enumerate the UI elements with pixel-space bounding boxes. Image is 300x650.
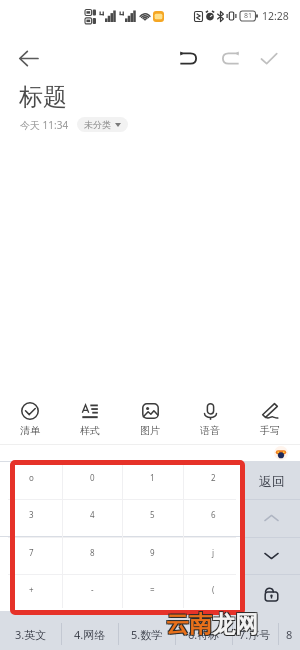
button[interactable]: 4 — [62, 499, 123, 536]
button[interactable]: ( — [183, 574, 243, 611]
staticText: o — [29, 472, 34, 483]
button[interactable]: 5 — [122, 499, 183, 536]
staticText: 7 — [29, 547, 34, 558]
staticText: 6.符标 — [188, 627, 220, 642]
button[interactable]: Undo — [171, 41, 206, 76]
staticText: 3.英文 — [15, 627, 47, 642]
button[interactable]: 8 — [62, 537, 123, 574]
button[interactable]: 1 — [122, 462, 183, 499]
button[interactable]: 3.英文 — [0, 618, 61, 650]
staticText: 云南龙网 — [167, 609, 259, 638]
button[interactable]: 未分类 — [77, 117, 128, 132]
staticText: 4 — [90, 509, 95, 520]
staticText: 返回 — [259, 473, 285, 489]
staticText: ( — [212, 584, 215, 595]
button[interactable]: 9 — [122, 537, 183, 574]
staticText: 6 — [211, 509, 216, 520]
staticText: 云南龙网 — [165, 609, 257, 638]
staticText: 云南龙网 — [165, 611, 257, 640]
staticText: 5.数学 — [131, 627, 163, 642]
button[interactable]: = — [122, 574, 183, 611]
button[interactable]: 语音 — [180, 396, 240, 440]
button[interactable]: 手写 — [240, 396, 300, 440]
button[interactable]: 7 — [0, 537, 62, 574]
staticText: 未分类 — [84, 119, 111, 130]
staticText: 81 — [244, 11, 253, 21]
staticText: 手写 — [260, 424, 280, 437]
staticText: + — [29, 584, 34, 595]
button[interactable]: 7.序号 — [232, 618, 278, 650]
staticText: j — [212, 547, 215, 558]
staticText: 今天 11:34 — [20, 118, 69, 132]
staticText: 0 — [90, 472, 95, 483]
button[interactable]: 样式 — [60, 396, 120, 440]
staticText: 标题 — [19, 82, 67, 112]
staticText: 5 — [150, 509, 155, 520]
staticText: 清单 — [20, 424, 40, 437]
button[interactable]: 清单 — [0, 396, 60, 440]
staticText: 云南龙网 — [167, 611, 259, 640]
button[interactable]: Lock — [243, 574, 300, 611]
button[interactable]: Redo — [213, 41, 248, 76]
staticText: 9 — [150, 547, 155, 558]
button[interactable]: 5.数学 — [118, 618, 175, 650]
staticText: 12:28 — [262, 9, 289, 23]
button[interactable]: 4.网络 — [61, 618, 118, 650]
staticText: 龙网 — [212, 610, 258, 639]
staticText: = — [150, 584, 155, 595]
button[interactable]: 3 — [0, 499, 62, 536]
staticText: 云南 — [166, 610, 212, 639]
button[interactable]: Done — [251, 41, 286, 76]
staticText: 7.序号 — [239, 627, 271, 642]
staticText: 语音 — [200, 424, 220, 437]
staticText: 8 — [286, 627, 293, 642]
staticText: 2 — [211, 472, 216, 483]
button[interactable]: 6 — [183, 499, 243, 536]
staticText: 3 — [29, 509, 34, 520]
staticText: 样式 — [80, 424, 100, 437]
button[interactable]: Keyboard logo — [273, 445, 288, 460]
button[interactable]: - — [62, 574, 123, 611]
staticText: 8 — [90, 547, 95, 558]
button[interactable]: Page down — [243, 537, 300, 574]
button[interactable]: o — [0, 462, 62, 499]
button[interactable]: 图片 — [120, 396, 180, 440]
button[interactable]: 2 — [183, 462, 243, 499]
button[interactable]: 8 — [278, 618, 300, 650]
staticText: 图片 — [140, 424, 160, 437]
button[interactable]: 6.符标 — [175, 618, 232, 650]
button[interactable]: Page up — [243, 499, 300, 536]
button[interactable]: j — [183, 537, 243, 574]
button[interactable]: + — [0, 574, 62, 611]
staticText: - — [91, 584, 94, 595]
button[interactable]: Return — [243, 462, 300, 499]
button[interactable]: Back — [11, 41, 46, 76]
button[interactable]: 0 — [62, 462, 123, 499]
staticText: 4.网络 — [74, 627, 106, 642]
staticText: 1 — [150, 472, 155, 483]
